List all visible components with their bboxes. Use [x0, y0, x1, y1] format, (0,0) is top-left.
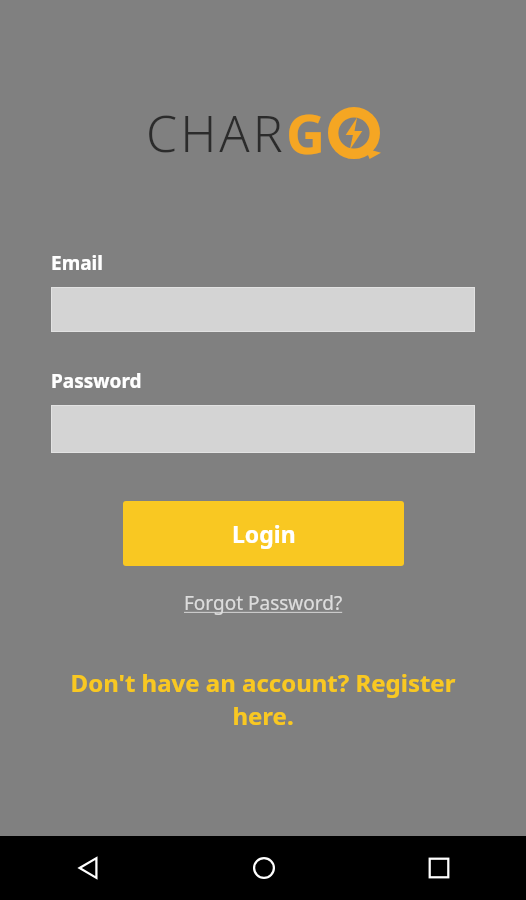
staticText: Password	[51, 368, 142, 394]
staticText: Forgot Password?	[184, 590, 343, 616]
button[interactable]: Home	[176, 836, 351, 900]
staticText: G	[286, 96, 326, 170]
staticText: Don't have an account? Register here.	[44, 666, 482, 732]
button[interactable]: Forgot Password?	[178, 584, 349, 622]
staticText: CHAR	[146, 99, 286, 167]
button[interactable]: Recent apps	[351, 836, 526, 900]
button[interactable]: Login	[123, 501, 404, 566]
staticText: Email	[51, 250, 103, 276]
staticText: Login	[232, 518, 296, 549]
button[interactable]: Don't have an account? Register here.	[44, 666, 482, 732]
button[interactable]: Back	[0, 836, 176, 900]
button[interactable]	[51, 287, 475, 332]
